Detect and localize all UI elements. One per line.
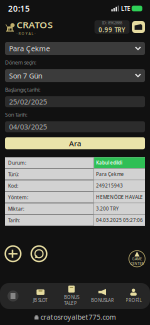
- button[interactable]: Wallet: [132, 21, 145, 33]
- staticText: Dönem seçin:: [5, 59, 36, 66]
- button[interactable]: BONUS TALEP: [58, 285, 85, 307]
- staticText: CRATOS: [16, 18, 52, 31]
- staticText: Kod:: [8, 182, 18, 189]
- staticText: Ara: [69, 138, 81, 148]
- staticText: Tarih:: [8, 217, 20, 224]
- button[interactable]: 04/03/2025: [5, 121, 145, 132]
- staticText: 0.99 TRY: [98, 26, 125, 34]
- staticText: 249215943: [96, 182, 123, 189]
- button[interactable]: 25/02/2025: [5, 96, 145, 107]
- staticText: LTE: [121, 4, 130, 13]
- staticText: cratosroyalbet775.com: [40, 312, 115, 322]
- staticText: Yöntem:: [8, 194, 28, 201]
- staticText: HEMENÖDE HAVALE: [96, 194, 143, 200]
- staticText: 20:15: [8, 3, 30, 14]
- button[interactable]: Game Center: [128, 250, 146, 268]
- button[interactable]: Son 7 Gün: [5, 69, 145, 82]
- staticText: Türü:: [8, 171, 19, 178]
- button[interactable]: Ara: [5, 137, 145, 149]
- staticText: GAME: [132, 256, 142, 261]
- button[interactable]: Para Çekme: [5, 42, 145, 55]
- staticText: Son 7 Gün: [9, 71, 42, 80]
- staticText: JB SLOT: [33, 297, 48, 303]
- staticText: 3.200 TRY: [96, 205, 119, 212]
- staticText: PROFİL: [125, 297, 141, 303]
- button[interactable]: ID: 8962888: [94, 20, 129, 34]
- staticText: BONUS TALEP: [64, 294, 79, 306]
- staticText: · R O Y A L ·: [16, 31, 35, 36]
- staticText: BONUSLAR: [91, 297, 114, 303]
- staticText: 04.03.2025 05:27:06: [96, 217, 143, 223]
- button[interactable]: Menu: [3, 285, 23, 307]
- button[interactable]: JB SLOT: [27, 285, 54, 307]
- staticText: Para Çekme: [96, 171, 124, 177]
- staticText: Miktar:: [8, 205, 24, 212]
- staticText: Para Çekme: [9, 44, 50, 53]
- button[interactable]: Add: [4, 245, 22, 263]
- staticText: Son Tarih:: [5, 111, 27, 118]
- staticText: 25/02/2025: [9, 97, 47, 107]
- staticText: Başlangıç tarihi:: [5, 86, 40, 93]
- staticText: Durum:: [8, 159, 26, 166]
- staticText: 04/03/2025: [9, 122, 47, 132]
- button[interactable]: PROFİL: [120, 285, 147, 307]
- staticText: CENTER: [130, 261, 143, 266]
- button[interactable]: WhatsApp: [30, 245, 48, 263]
- button[interactable]: BONUSLAR: [89, 285, 116, 307]
- staticText: Kabul edildi: [96, 159, 122, 166]
- staticText: ID: 8962888: [102, 20, 122, 25]
